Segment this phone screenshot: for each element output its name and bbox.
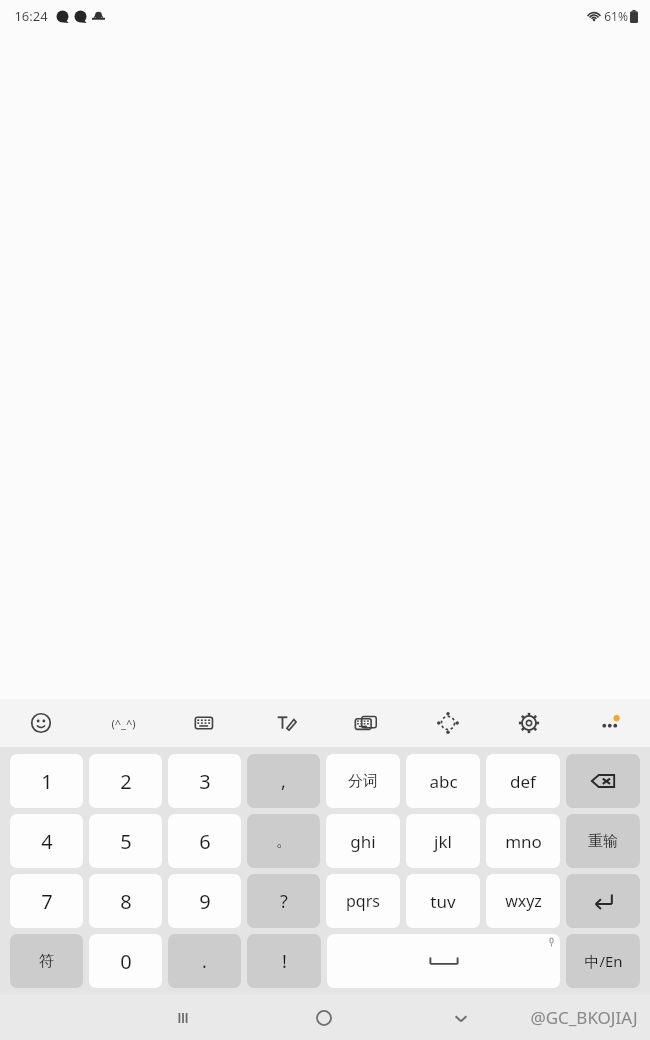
staticText: , [281, 769, 286, 794]
staticText: ? [280, 889, 288, 914]
staticText: jkl [434, 830, 452, 853]
staticText: ! [282, 949, 287, 974]
staticText: mno [505, 830, 542, 853]
staticText: 4 [41, 828, 53, 855]
button[interactable]: Recents [162, 997, 204, 1039]
button[interactable]: 。 [247, 814, 320, 868]
button[interactable]: 8 [89, 874, 162, 928]
staticText: tuv [430, 890, 456, 913]
staticText: 9 [199, 888, 211, 915]
staticText: abc [429, 770, 458, 793]
button[interactable]: tuv [406, 874, 480, 928]
staticText: @GC_BKOJIAJ [530, 1006, 638, 1029]
staticText: wxyz [505, 890, 542, 912]
staticText: 2 [120, 768, 132, 795]
button[interactable]: Hide keyboard [440, 997, 482, 1039]
button[interactable]: 6 [168, 814, 241, 868]
button[interactable]: 1 [10, 754, 83, 808]
button[interactable]: 4 [10, 814, 83, 868]
button[interactable]: 9 [168, 874, 241, 928]
button[interactable]: Clipboard [326, 699, 407, 747]
staticText: 6 [199, 828, 211, 855]
button[interactable]: def [486, 754, 560, 808]
button[interactable]: ? [247, 874, 320, 928]
staticText: pqrs [346, 890, 380, 912]
button[interactable]: Space [327, 934, 560, 988]
button[interactable]: Delete [566, 754, 640, 808]
button[interactable]: , [247, 754, 320, 808]
button[interactable]: Keyboard layout [164, 699, 245, 747]
button[interactable]: ghi [326, 814, 400, 868]
staticText: (^_^) [111, 716, 136, 731]
staticText: . [202, 949, 207, 974]
button[interactable]: 5 [89, 814, 162, 868]
staticText: 分词 [348, 772, 378, 791]
staticText: 0 [120, 948, 132, 975]
button[interactable]: 重输 [566, 814, 640, 868]
button[interactable]: mno [486, 814, 560, 868]
button[interactable]: 符 [10, 934, 83, 988]
staticText: 16:24 [14, 7, 48, 25]
button[interactable]: ! [247, 934, 321, 988]
button[interactable]: Resize keyboard [407, 699, 488, 747]
staticText: 8 [120, 888, 132, 915]
staticText: 61% [604, 8, 628, 24]
button[interactable]: 2 [89, 754, 162, 808]
staticText: 7 [41, 888, 53, 915]
staticText: 符 [39, 952, 54, 971]
button[interactable]: pqrs [326, 874, 400, 928]
button[interactable]: Home [303, 997, 345, 1039]
button[interactable]: jkl [406, 814, 480, 868]
button[interactable]: Emoticons [82, 699, 164, 747]
button[interactable]: Keyboard settings [488, 699, 569, 747]
staticText: 3 [199, 768, 211, 795]
button[interactable]: 0 [89, 934, 162, 988]
button[interactable]: Emoji [0, 699, 82, 747]
button[interactable]: Handwriting [245, 699, 326, 747]
button[interactable]: 3 [168, 754, 241, 808]
staticText: 中/En [584, 951, 623, 971]
staticText: 5 [120, 828, 132, 855]
button[interactable]: wxyz [486, 874, 560, 928]
button[interactable]: 7 [10, 874, 83, 928]
button[interactable]: Enter [566, 874, 640, 928]
staticText: 1 [41, 768, 53, 795]
button[interactable]: More options [569, 699, 650, 747]
staticText: def [510, 770, 536, 793]
staticText: 。 [276, 831, 292, 851]
button[interactable]: . [168, 934, 241, 988]
button[interactable]: abc [406, 754, 480, 808]
button[interactable]: 分词 [326, 754, 400, 808]
staticText: 重输 [588, 832, 618, 851]
staticText: ghi [350, 830, 376, 853]
button[interactable]: 中/En [566, 934, 640, 988]
